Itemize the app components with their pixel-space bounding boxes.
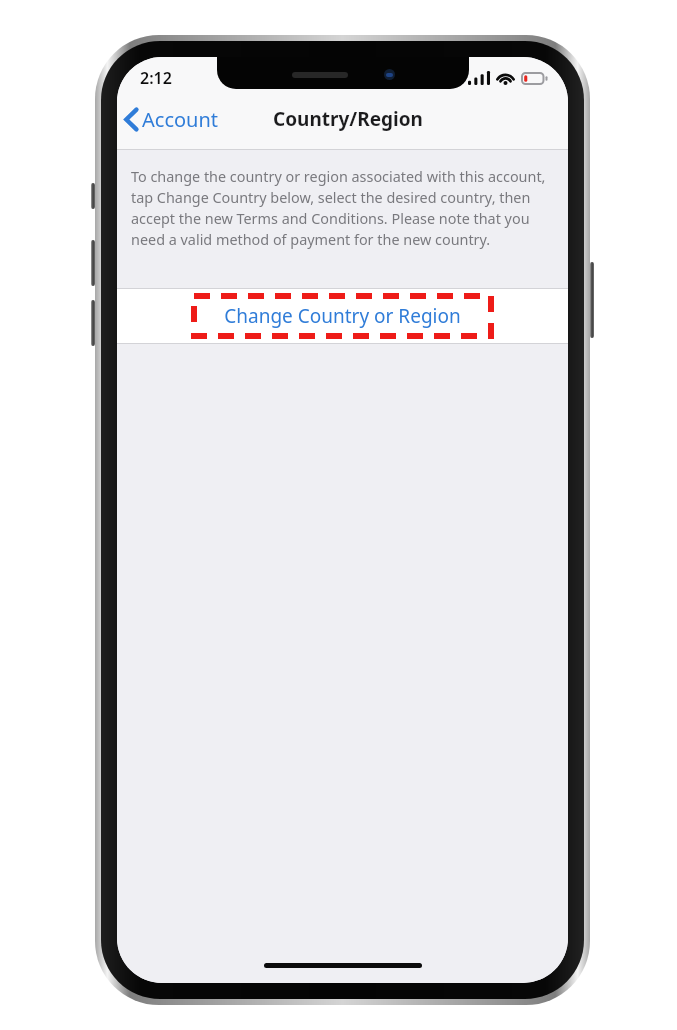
button[interactable]: Back [117,99,231,140]
other: Back [125,108,138,131]
staticText: Change Country or Region [224,303,461,329]
staticText: 2:12 [140,67,172,89]
staticText: To change the country or region associat… [131,167,556,250]
staticText: Country/Region [273,106,423,132]
button[interactable]: Change Country or Region [117,288,568,344]
staticText: Account [142,106,219,133]
